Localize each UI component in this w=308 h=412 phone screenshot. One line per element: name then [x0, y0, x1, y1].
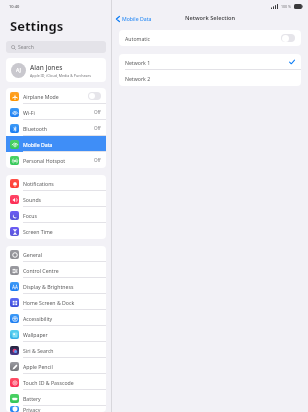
button[interactable]: AJ — [6, 58, 106, 82]
staticText: Network 1 — [125, 59, 151, 66]
staticText: AJ — [16, 67, 21, 74]
button[interactable]: Mobile Data — [6, 136, 106, 152]
staticText: Personal Hotspot — [23, 157, 66, 164]
staticText: Mobile Data — [23, 141, 53, 148]
staticText: Touch ID & Passcode — [23, 379, 74, 386]
staticText: Network 2 — [125, 75, 151, 82]
staticText: Network Selection — [185, 14, 236, 22]
button[interactable]: Network 2 — [119, 70, 301, 86]
staticText: Notifications — [23, 180, 54, 187]
staticText: Airplane Mode — [23, 93, 59, 100]
button[interactable]: Apple Pencil — [6, 358, 106, 374]
staticText: Off — [94, 125, 101, 131]
button[interactable]: Automatic — [119, 30, 301, 46]
button[interactable]: Privacy — [6, 406, 106, 412]
staticText: Siri & Search — [23, 347, 54, 354]
staticText: Display & Brightness — [23, 283, 74, 290]
staticText: General — [23, 251, 43, 258]
button[interactable]: Mobile Data — [116, 15, 152, 22]
staticText: Control Centre — [23, 267, 59, 274]
button[interactable]: Focus — [6, 207, 106, 223]
button[interactable]: Touch ID & Passcode — [6, 374, 106, 390]
staticText: Settings — [10, 17, 64, 35]
button[interactable]: General — [6, 246, 106, 262]
staticText: Accessibility — [23, 315, 53, 322]
button[interactable]: Wallpaper — [6, 326, 106, 342]
button[interactable]: Search — [6, 41, 106, 53]
staticText: Automatic — [125, 35, 150, 42]
staticText: Battery — [23, 395, 41, 402]
button[interactable]: Accessibility — [6, 310, 106, 326]
button[interactable]: Control Centre — [6, 262, 106, 278]
staticText: Alan Jones — [30, 63, 63, 72]
button[interactable]: Wi-Fi — [6, 104, 106, 120]
staticText: Screen Time — [23, 228, 53, 235]
staticText: Mobile Data — [122, 15, 152, 22]
staticText: Apple ID, iCloud, Media & Purchases — [30, 73, 92, 78]
staticText: Search — [18, 44, 34, 51]
button[interactable]: Network 1 — [119, 54, 301, 70]
button[interactable]: Display & Brightness — [6, 278, 106, 294]
button[interactable]: Automatic toggle — [281, 34, 295, 42]
button[interactable]: Personal Hotspot — [6, 152, 106, 168]
staticText: Apple Pencil — [23, 363, 53, 370]
staticText: Privacy — [23, 406, 41, 412]
button[interactable]: Screen Time — [6, 223, 106, 239]
button[interactable]: Battery — [6, 390, 106, 406]
button[interactable]: Home Screen & Dock — [6, 294, 106, 310]
staticText: Home Screen & Dock — [23, 299, 75, 306]
staticText: Focus — [23, 212, 38, 219]
staticText: Off — [94, 157, 101, 163]
staticText: 10:40 — [9, 4, 20, 9]
button[interactable]: Airplane Mode — [6, 88, 106, 104]
staticText: 100 % — [281, 4, 292, 9]
staticText: Sounds — [23, 196, 42, 203]
button[interactable]: Notifications — [6, 175, 106, 191]
staticText: Wi-Fi — [23, 109, 35, 116]
staticText: Wallpaper — [23, 331, 48, 338]
button[interactable]: Siri & Search — [6, 342, 106, 358]
staticText: Off — [94, 109, 101, 115]
button[interactable]: Sounds — [6, 191, 106, 207]
button[interactable]: Bluetooth — [6, 120, 106, 136]
button[interactable]: Airplane Mode toggle — [88, 92, 101, 100]
staticText: Bluetooth — [23, 125, 48, 132]
